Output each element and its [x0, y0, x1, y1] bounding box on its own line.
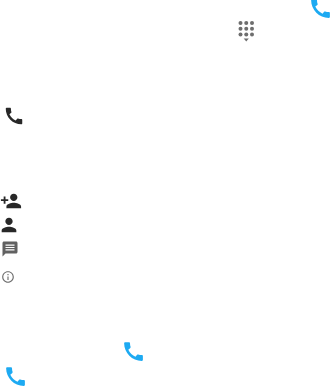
other: Add contact — [0, 190, 22, 212]
button[interactable]: Call — [121, 339, 146, 364]
button[interactable]: Send message — [0, 238, 330, 264]
button[interactable]: Add contact — [0, 186, 330, 212]
button[interactable]: View contact — [0, 212, 330, 238]
button[interactable]: Dialpad — [260, 0, 316, 56]
button[interactable] — [0, 94, 330, 134]
button[interactable]: Call — [308, 0, 330, 21]
button[interactable]: Call details — [0, 264, 330, 290]
other: Call details — [1, 270, 15, 284]
other: Send message — [1, 240, 19, 258]
other: View contact — [0, 214, 20, 236]
button[interactable]: Call — [3, 364, 28, 386]
